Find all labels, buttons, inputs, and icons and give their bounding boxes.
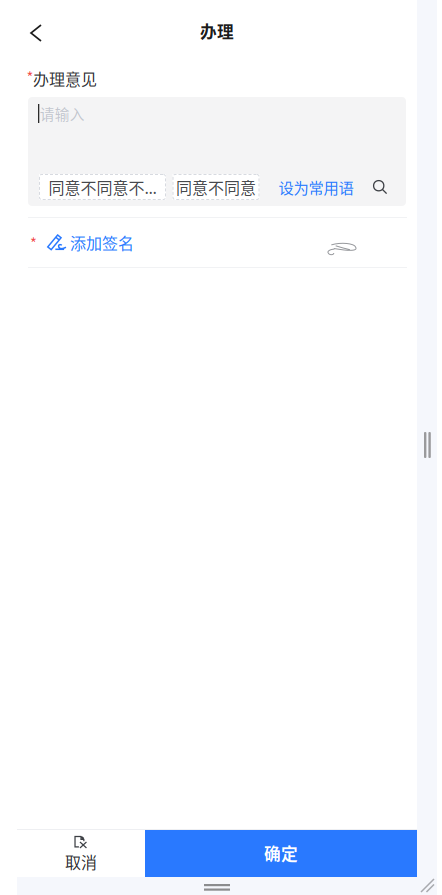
button[interactable]: 设为常用语 — [278, 174, 353, 200]
button[interactable]: 取消 — [17, 829, 145, 877]
staticText: 同意不同意不... — [48, 175, 156, 199]
staticText: 取消 — [65, 850, 97, 873]
button[interactable]: 同意不同意 — [172, 174, 259, 200]
button[interactable]: * — [30, 217, 134, 268]
staticText: 添加签名 — [70, 231, 134, 254]
button[interactable]: 返回 — [14, 11, 58, 55]
button[interactable]: 同意不同意不... — [39, 174, 166, 200]
button[interactable]: 搜索 — [367, 174, 393, 200]
staticText: 同意不同意 — [176, 175, 256, 199]
staticText: * — [30, 232, 37, 253]
staticText: * — [26, 66, 33, 87]
staticText: 办理意见 — [33, 67, 97, 90]
staticText: 设为常用语 — [278, 176, 353, 198]
staticText: 请输入 — [40, 103, 85, 124]
button[interactable]: 确定 — [145, 829, 417, 877]
staticText: 确定 — [264, 841, 298, 865]
staticText: 办理 — [200, 19, 234, 43]
